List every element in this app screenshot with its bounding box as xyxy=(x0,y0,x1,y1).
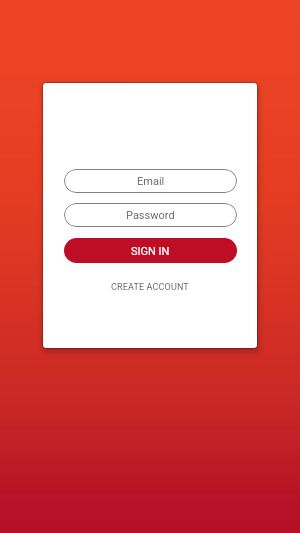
button[interactable]: Sign in xyxy=(64,238,237,263)
staticText: CREATE ACCOUNT xyxy=(111,282,189,293)
button[interactable]: CREATE ACCOUNT xyxy=(107,278,193,297)
button[interactable]: Email xyxy=(64,169,237,193)
button[interactable]: Password xyxy=(64,203,237,227)
staticText: Password xyxy=(126,209,175,222)
staticText: Email xyxy=(137,175,165,188)
staticText: SIGN IN xyxy=(131,245,170,258)
